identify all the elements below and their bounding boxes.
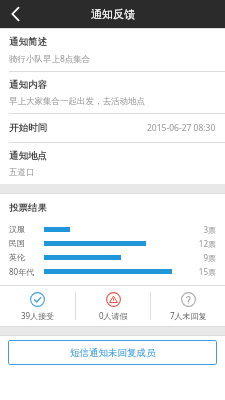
button[interactable]: 7人未回复 xyxy=(151,289,225,324)
staticText: 39人接受 xyxy=(21,310,55,321)
button[interactable]: 短信通知未回复成员 xyxy=(8,340,217,365)
button[interactable]: 通知地点 xyxy=(0,143,225,184)
button[interactable]: 通知内容 xyxy=(0,72,225,113)
staticText: 骑行小队早上8点集合 xyxy=(9,53,91,65)
button[interactable]: 通知简述 xyxy=(0,29,225,71)
staticText: 汉服 xyxy=(9,224,25,234)
staticText: 80年代 xyxy=(9,266,35,277)
staticText: 7人未回复 xyxy=(170,310,207,321)
staticText: 12票 xyxy=(186,238,216,249)
staticText: 0人请假 xyxy=(99,310,128,321)
staticText: 2015-06-27 08:30 xyxy=(147,122,216,134)
staticText: 3票 xyxy=(186,224,216,235)
staticText: 开始时间 xyxy=(9,122,47,134)
staticText: 投票结果 xyxy=(9,202,47,214)
staticText: 英伦 xyxy=(9,252,25,262)
staticText: 通知地点 xyxy=(9,150,47,162)
staticText: 五道口 xyxy=(9,167,35,178)
button[interactable]: 0人请假 xyxy=(76,289,150,324)
staticText: 15票 xyxy=(186,266,216,277)
staticText: 短信通知未回复成员 xyxy=(70,347,156,359)
staticText: 通知反馈 xyxy=(91,7,135,21)
button[interactable]: 39人接受 xyxy=(0,289,75,324)
staticText: 早上大家集合一起出发，去活动地点 xyxy=(9,96,145,107)
staticText: 通知简述 xyxy=(9,36,47,48)
staticText: 通知内容 xyxy=(9,79,47,91)
staticText: 9票 xyxy=(186,252,216,263)
button[interactable]: Back xyxy=(0,0,30,28)
staticText: 民国 xyxy=(9,238,25,248)
button[interactable]: 开始时间 xyxy=(0,114,225,142)
